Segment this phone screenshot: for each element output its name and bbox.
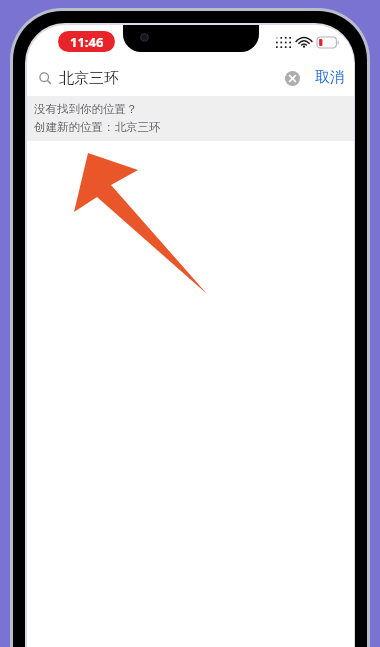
- button[interactable]: 北京三环: [31, 62, 308, 93]
- staticText: 创建新的位置：北京三环: [34, 120, 161, 134]
- staticText: 北京三环: [59, 69, 119, 88]
- button[interactable]: Clear search: [279, 65, 305, 91]
- staticText: 11:46: [70, 33, 104, 51]
- staticText: 没有找到你的位置？: [34, 102, 138, 116]
- button[interactable]: 取消: [308, 62, 352, 93]
- button[interactable]: 没有找到你的位置？: [27, 96, 354, 141]
- staticText: 取消: [315, 68, 345, 87]
